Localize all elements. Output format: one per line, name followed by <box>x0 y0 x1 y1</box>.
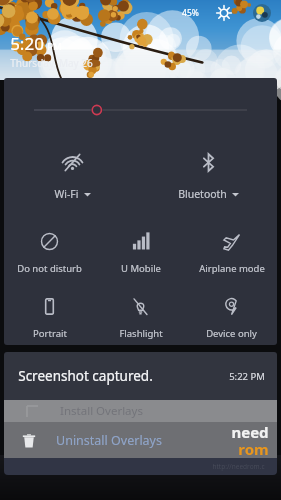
button[interactable]: User profile <box>251 2 273 24</box>
button[interactable]: U Mobile <box>95 222 186 284</box>
button[interactable]: Airplane mode <box>186 222 277 284</box>
staticText: Airplane mode <box>199 262 265 275</box>
button[interactable]: Wi-Fi <box>4 142 140 210</box>
staticText: Uninstall Overlays <box>56 432 162 449</box>
staticText: 45% <box>182 7 199 19</box>
staticText: rom <box>238 439 269 455</box>
button[interactable]: Screenshot captured. <box>4 352 277 400</box>
button[interactable]: Flashlight <box>95 292 186 345</box>
staticText: 5:22 PM <box>229 370 265 383</box>
staticText: Bluetooth <box>178 187 227 201</box>
staticText: PM <box>47 40 62 53</box>
staticText: U Mobile <box>121 262 161 275</box>
staticText: 5:20 <box>10 32 44 55</box>
staticText: Do not disturb <box>17 262 82 275</box>
button[interactable]: Do not disturb <box>4 222 95 284</box>
button[interactable]: Install Overlays <box>4 400 277 422</box>
button[interactable]: Uninstall <box>4 422 277 458</box>
staticText: need <box>231 422 269 442</box>
button[interactable]: Settings <box>213 2 235 24</box>
button[interactable]: Brightness <box>34 100 247 120</box>
staticText: Wi-Fi <box>54 187 79 201</box>
staticText: Device only <box>206 327 257 340</box>
staticText: Install Overlays <box>60 403 143 419</box>
staticText: Thursday, May 26 <box>10 56 93 70</box>
other: Uninstall <box>22 434 36 448</box>
button[interactable]: Bluetooth <box>140 142 277 210</box>
button[interactable]: Device only <box>186 292 277 345</box>
staticText: Portrait <box>33 327 67 340</box>
staticText: Flashlight <box>119 327 163 340</box>
button[interactable]: Portrait <box>4 292 95 345</box>
staticText: Screenshot captured. <box>18 367 153 385</box>
staticText: http://needrom.c <box>212 462 265 471</box>
